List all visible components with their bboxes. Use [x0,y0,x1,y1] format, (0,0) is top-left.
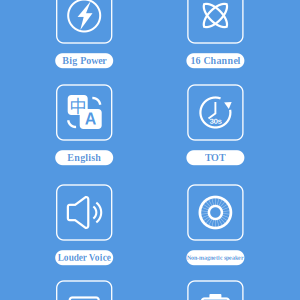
button[interactable]: 中 [22,85,146,165]
staticText: English [67,152,101,163]
staticText: Non-magnetic speaker [187,254,244,261]
staticText: TOT [205,152,226,163]
button[interactable]: Louder Voice [22,185,146,265]
staticText: 30s [209,116,221,125]
button[interactable]: Battery [153,281,277,300]
button[interactable]: 16 Channel [153,0,277,68]
button[interactable]: Screen [22,281,146,300]
staticText: 中 [69,92,86,118]
staticText: 16 Channel [190,55,240,66]
staticText: Big Power [62,55,106,66]
button[interactable]: Non-magnetic speaker [153,185,277,265]
button[interactable]: 30s [153,85,277,165]
button[interactable]: Big Power [22,0,146,68]
staticText: A [85,110,97,128]
staticText: Louder Voice [58,252,111,263]
